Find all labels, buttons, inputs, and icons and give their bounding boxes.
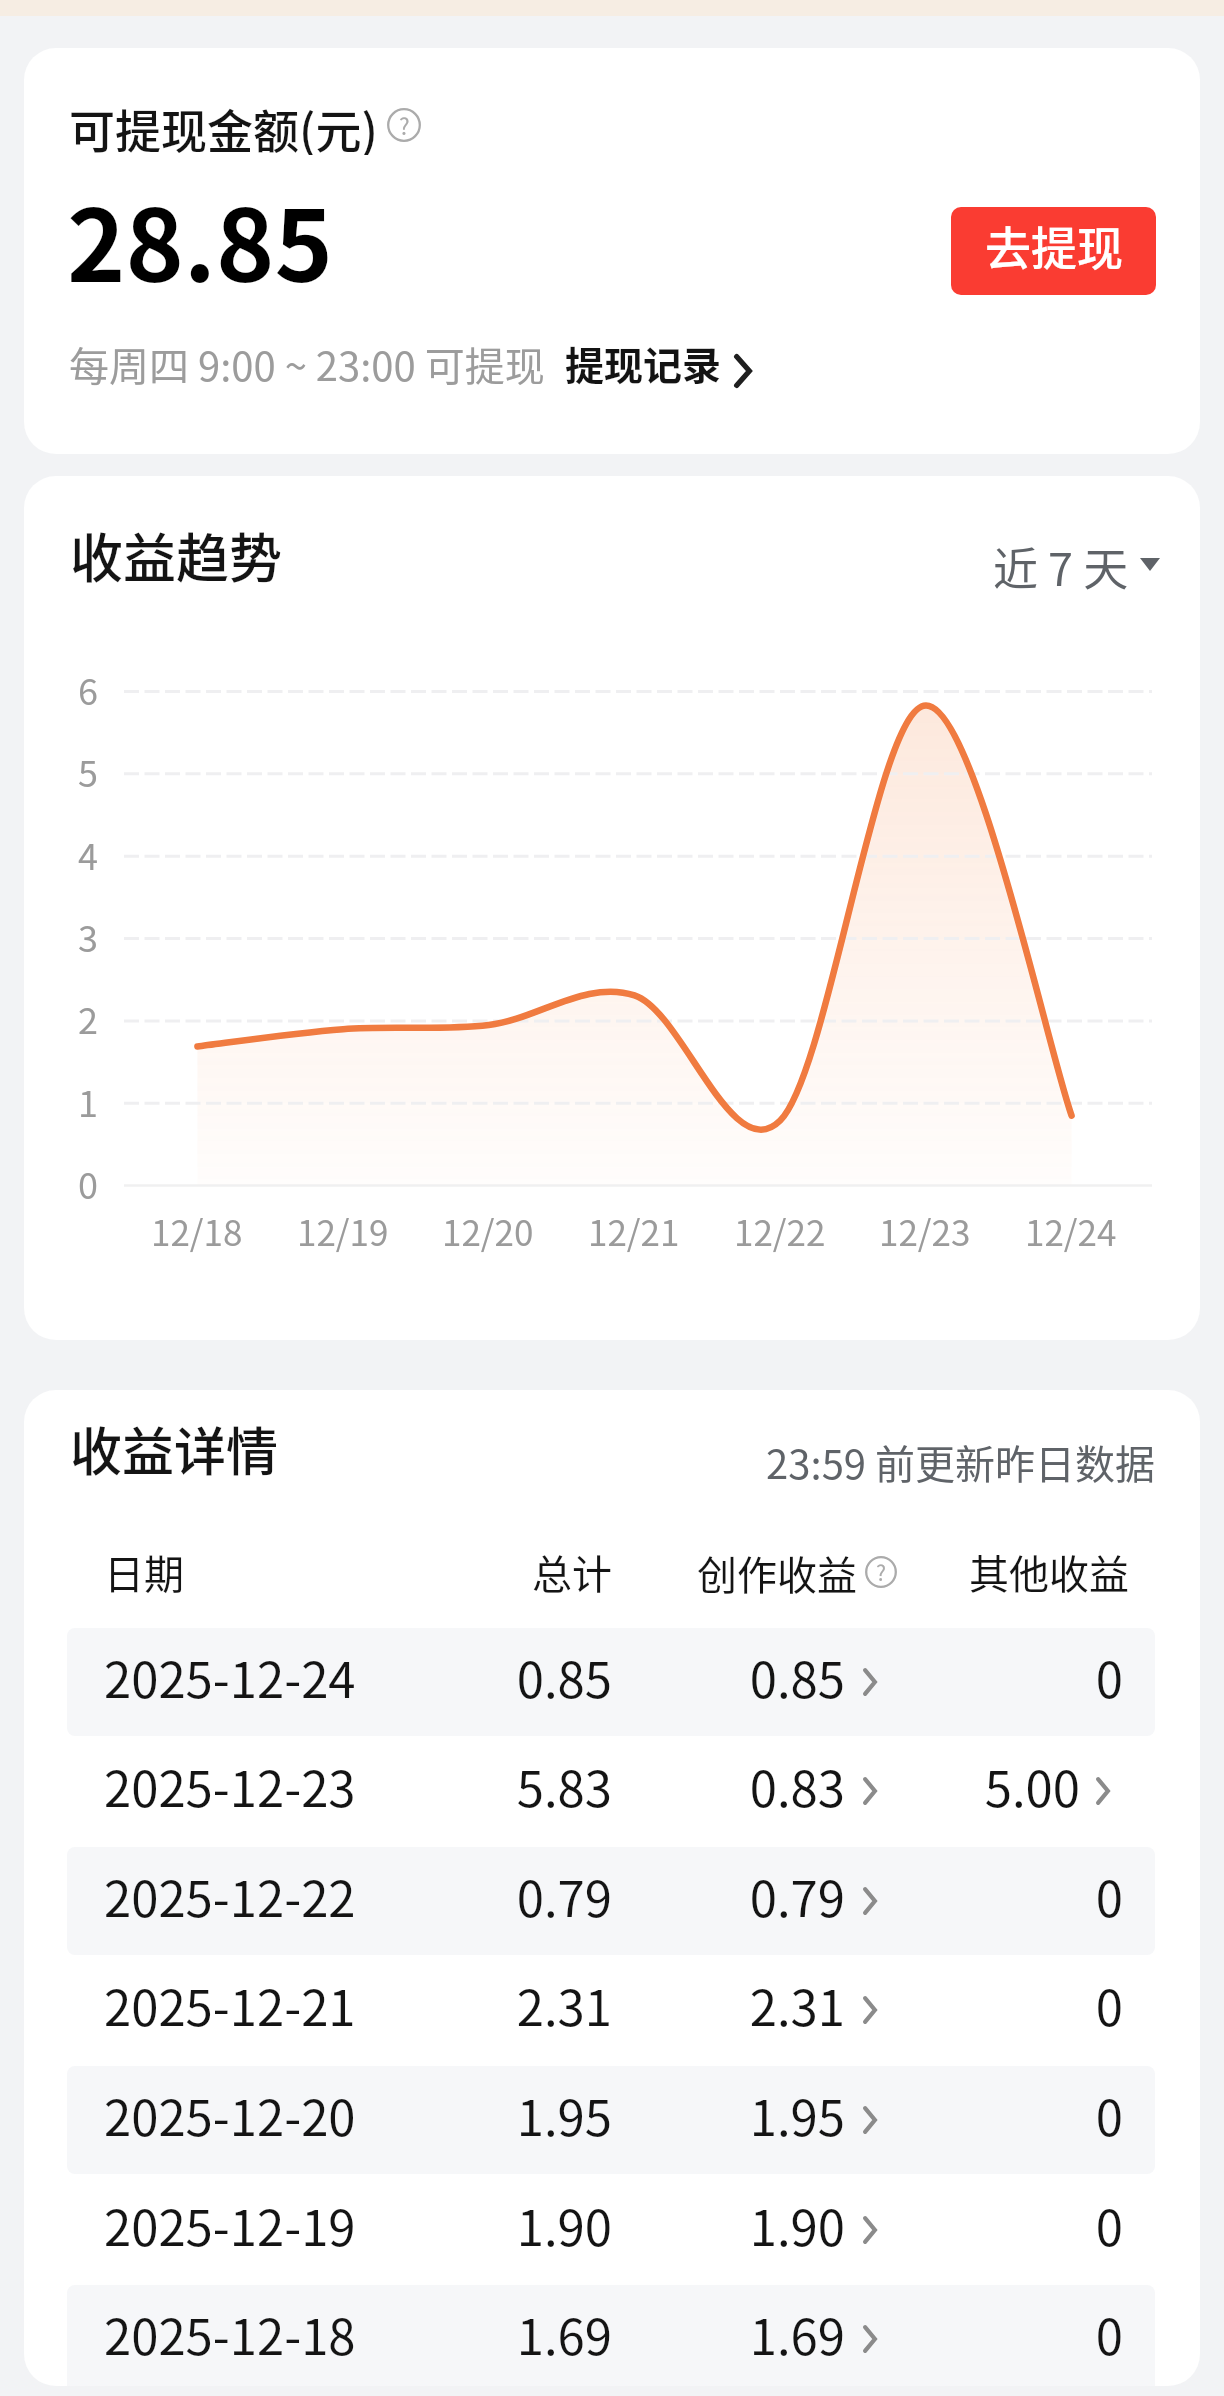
staticText: 2025-12-18 bbox=[104, 2298, 1004, 2369]
staticText: 6 bbox=[38, 663, 98, 715]
staticText: 0.85 bbox=[545, 1641, 845, 1712]
button[interactable]: 2025-12-21 bbox=[67, 1956, 1155, 2064]
staticText: 1.69 bbox=[312, 2298, 612, 2369]
staticText: 5 bbox=[38, 745, 98, 797]
staticText: 0.85 bbox=[312, 1641, 612, 1712]
staticText: 提现记录 bbox=[565, 335, 722, 391]
button[interactable]: 创作收益说明 bbox=[865, 1556, 897, 1588]
button[interactable]: 提现记录 bbox=[565, 335, 752, 391]
button[interactable]: 详情 bbox=[848, 1879, 892, 1923]
staticText: 5.00 bbox=[780, 1750, 1080, 1821]
staticText: 0 bbox=[823, 2189, 1123, 2260]
staticText: 23:59 前更新昨日数据 bbox=[555, 1433, 1155, 1491]
staticText: 12/24 bbox=[1025, 1205, 1117, 1256]
button[interactable]: 可提现金额说明 bbox=[387, 108, 421, 142]
staticText: 2025-12-19 bbox=[104, 2189, 1004, 2260]
button[interactable]: 去提现 bbox=[951, 207, 1156, 295]
staticText: 近 7 天 bbox=[993, 534, 1129, 594]
staticText: 2025-12-21 bbox=[104, 1969, 1004, 2040]
staticText: 0 bbox=[823, 2298, 1123, 2369]
staticText: 1.95 bbox=[545, 2079, 845, 2150]
staticText: 4 bbox=[38, 828, 98, 880]
staticText: 2.31 bbox=[545, 1969, 845, 2040]
button[interactable]: 2025-12-24 bbox=[67, 1628, 1155, 1736]
staticText: 12/20 bbox=[442, 1205, 534, 1256]
button[interactable]: 详情 bbox=[848, 1660, 892, 1704]
staticText: 1 bbox=[38, 1075, 98, 1127]
staticText: 12/23 bbox=[879, 1205, 971, 1256]
button[interactable]: 详情 bbox=[848, 2098, 892, 2142]
button[interactable]: 2025-12-19 bbox=[67, 2176, 1155, 2284]
staticText: 12/21 bbox=[588, 1205, 680, 1256]
staticText: 12/22 bbox=[734, 1205, 826, 1256]
staticText: 创作收益 bbox=[697, 1544, 857, 1600]
staticText: 总计 bbox=[312, 1543, 612, 1601]
staticText: 可提现金额(元) bbox=[69, 95, 378, 155]
button[interactable]: 2025-12-20 bbox=[67, 2066, 1155, 2174]
button[interactable]: 详情 bbox=[848, 2317, 892, 2361]
staticText: 2.31 bbox=[312, 1969, 612, 2040]
staticText: 2025-12-24 bbox=[104, 1641, 1004, 1712]
staticText: ? bbox=[399, 109, 410, 141]
staticText: 5.83 bbox=[312, 1750, 612, 1821]
staticText: 0 bbox=[823, 1641, 1123, 1712]
staticText: 0.79 bbox=[312, 1860, 612, 1931]
staticText: 1.69 bbox=[545, 2298, 845, 2369]
button[interactable]: 2025-12-23 bbox=[67, 1737, 1155, 1845]
staticText: 28.85 bbox=[67, 167, 967, 310]
button[interactable]: 2025-12-18 bbox=[67, 2285, 1155, 2386]
staticText: 其他收益 bbox=[829, 1543, 1129, 1601]
button[interactable]: 详情 bbox=[1081, 1769, 1125, 1813]
staticText: 2025-12-20 bbox=[104, 2079, 1004, 2150]
staticText: ? bbox=[876, 1557, 887, 1588]
staticText: 1.90 bbox=[545, 2189, 845, 2260]
staticText: 0 bbox=[823, 1860, 1123, 1931]
staticText: 0 bbox=[823, 2079, 1123, 2150]
staticText: 每周四 9:00 ~ 23:00 可提现 bbox=[69, 335, 545, 391]
staticText: 0.79 bbox=[545, 1860, 845, 1931]
staticText: 0 bbox=[38, 1157, 98, 1209]
button[interactable]: 详情 bbox=[848, 1769, 892, 1813]
staticText: 去提现 bbox=[969, 212, 1139, 279]
staticText: 2 bbox=[38, 992, 98, 1044]
staticText: 日期 bbox=[104, 1543, 1004, 1601]
staticText: 12/19 bbox=[297, 1205, 389, 1256]
staticText: 收益趋势 bbox=[70, 517, 970, 594]
staticText: 1.95 bbox=[312, 2079, 612, 2150]
button[interactable]: 近 7 天 bbox=[993, 534, 1160, 594]
button[interactable]: 2025-12-22 bbox=[67, 1847, 1155, 1955]
staticText: 3 bbox=[38, 910, 98, 962]
staticText: 收益详情 bbox=[70, 1411, 970, 1486]
staticText: 1.90 bbox=[312, 2189, 612, 2260]
button[interactable]: 详情 bbox=[848, 1988, 892, 2032]
staticText: 2025-12-22 bbox=[104, 1860, 1004, 1931]
staticText: 0.83 bbox=[545, 1750, 845, 1821]
staticText: 12/18 bbox=[151, 1205, 243, 1256]
button[interactable]: 详情 bbox=[848, 2208, 892, 2252]
staticText: 2025-12-23 bbox=[104, 1750, 1004, 1821]
staticText: 0 bbox=[823, 1969, 1123, 2040]
